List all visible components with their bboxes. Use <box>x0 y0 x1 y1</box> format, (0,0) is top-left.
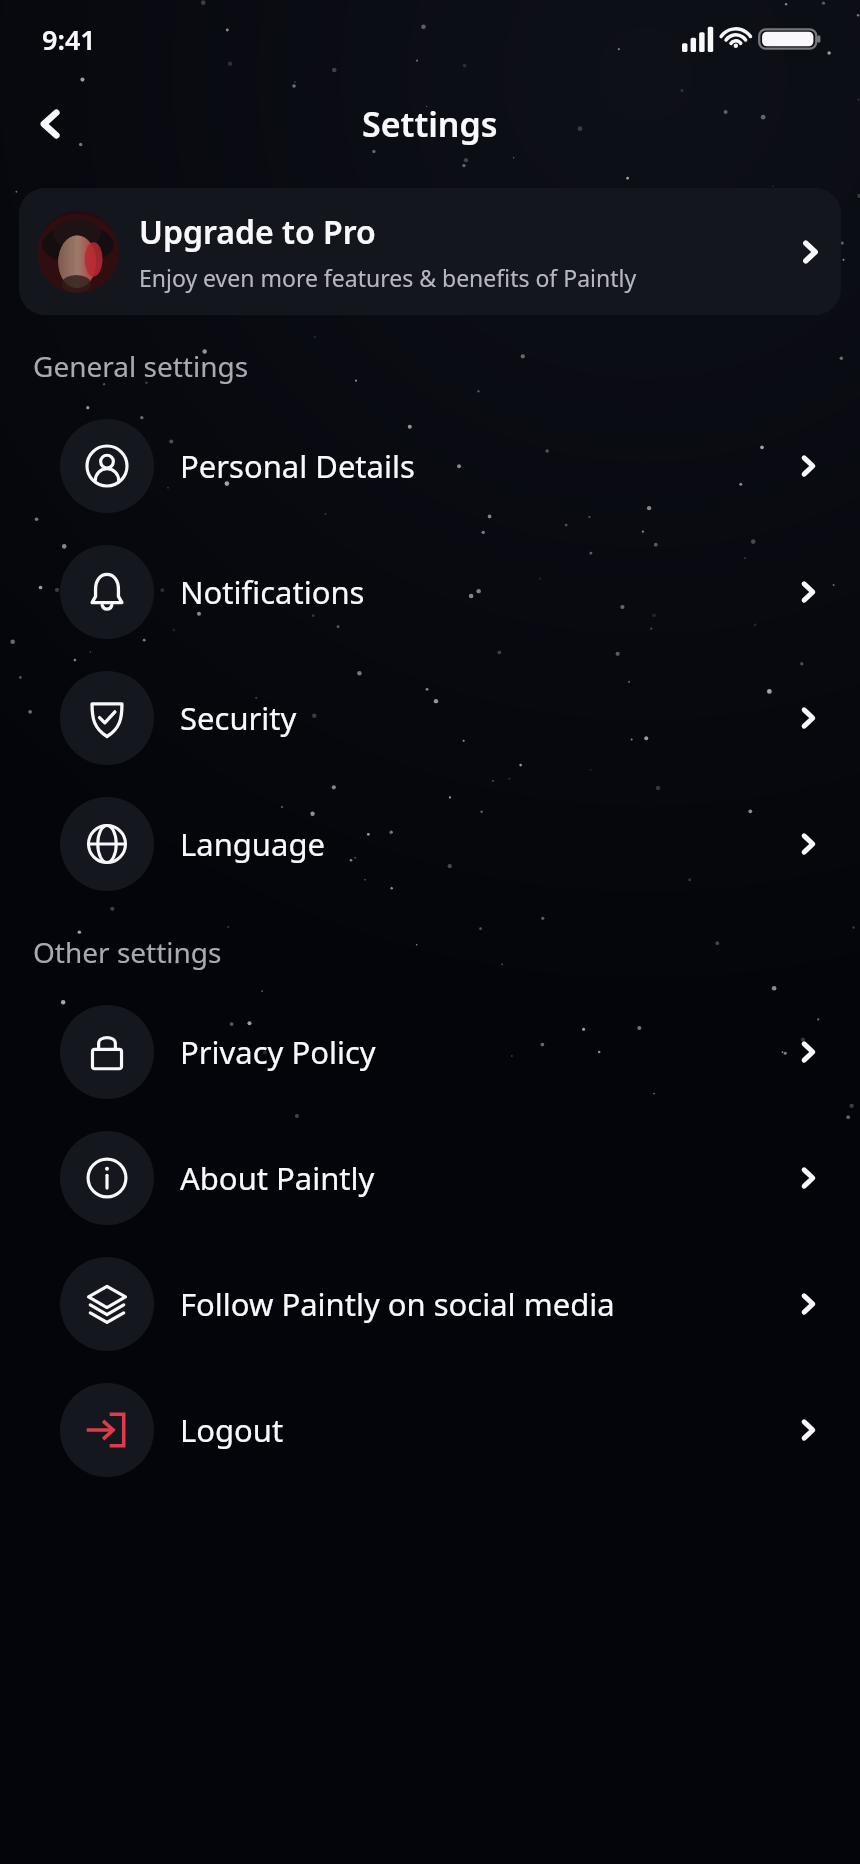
staticText: Notifications <box>180 571 788 613</box>
button[interactable]: Back <box>20 93 82 155</box>
staticText: Enjoy even more features & benefits of P… <box>139 262 637 293</box>
staticText: Settings <box>362 101 498 147</box>
staticText: Language <box>180 823 788 865</box>
staticText: Security <box>180 697 788 739</box>
staticText: 9:41 <box>42 21 96 58</box>
staticText: Logout <box>180 1409 788 1451</box>
button[interactable]: Privacy Policy <box>0 989 860 1115</box>
staticText: Personal Details <box>180 445 788 487</box>
staticText: Privacy Policy <box>180 1031 788 1073</box>
button[interactable]: Notifications <box>0 529 860 655</box>
staticText: Other settings <box>33 933 222 971</box>
button[interactable]: Upgrade to Pro <box>19 188 841 315</box>
staticText: General settings <box>33 347 249 385</box>
button[interactable]: Language <box>0 781 860 907</box>
button[interactable]: Personal Details <box>0 403 860 529</box>
staticText: Follow Paintly on social media <box>180 1283 788 1325</box>
button[interactable]: About Paintly <box>0 1115 860 1241</box>
button[interactable]: Follow Paintly on social media <box>0 1241 860 1367</box>
button[interactable]: Logout <box>0 1367 860 1493</box>
button[interactable]: Security <box>0 655 860 781</box>
staticText: Upgrade to Pro <box>139 210 376 254</box>
staticText: About Paintly <box>180 1157 788 1199</box>
